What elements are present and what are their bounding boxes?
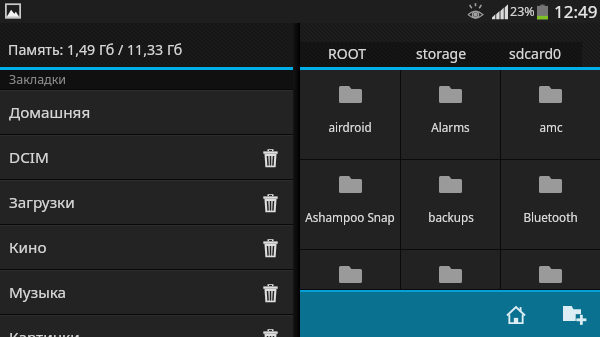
button[interactable]: Музыка — [0, 271, 293, 314]
staticText: DCIM — [9, 147, 248, 168]
staticText: 23% — [510, 3, 535, 20]
button[interactable]: amc — [501, 70, 600, 159]
button[interactable]: Память: 1,49 Гб / 11,33 Гб — [0, 23, 293, 67]
staticText: amc — [539, 119, 563, 135]
staticText: Загрузки — [9, 192, 248, 213]
staticText: ROOT — [328, 44, 366, 63]
staticText: Музыка — [9, 282, 248, 303]
staticText: Кино — [9, 237, 248, 258]
button[interactable]: Ashampoo Snap — [300, 160, 400, 249]
button[interactable] — [300, 250, 400, 289]
button[interactable]: ROOT — [300, 42, 394, 67]
staticText: Alarms — [431, 119, 470, 135]
button[interactable]: backups — [401, 160, 500, 249]
staticText: Картинки — [9, 327, 248, 337]
staticText: Ashampoo Snap — [305, 209, 395, 225]
button[interactable]: Alarms — [401, 70, 500, 159]
staticText: backups — [428, 209, 474, 225]
staticText: sdcard0 — [509, 44, 562, 63]
staticText: Bluetooth — [523, 209, 578, 225]
button[interactable]: Домашняя — [0, 91, 293, 134]
button[interactable]: Delete bookmark — [248, 136, 293, 179]
button[interactable]: New folder — [550, 293, 594, 337]
button[interactable]: Кино — [0, 226, 293, 269]
button[interactable]: sdcard0 — [488, 42, 582, 67]
button[interactable]: Delete bookmark — [248, 271, 293, 314]
staticText: Закладки — [9, 71, 67, 88]
staticText: Память: 1,49 Гб / 11,33 Гб — [8, 40, 183, 59]
button[interactable]: Delete bookmark — [248, 181, 293, 224]
button[interactable]: airdroid — [300, 70, 400, 159]
staticText: airdroid — [328, 119, 372, 135]
button[interactable]: Delete bookmark — [248, 226, 293, 269]
button[interactable]: Home — [494, 293, 538, 337]
staticText: Домашняя — [9, 102, 293, 123]
staticText: 12:49 — [554, 0, 598, 23]
button[interactable]: Delete bookmark — [248, 316, 293, 337]
button[interactable]: storage — [394, 42, 488, 67]
button[interactable] — [401, 250, 500, 289]
button[interactable]: Загрузки — [0, 181, 293, 224]
button[interactable]: Bluetooth — [501, 160, 600, 249]
button[interactable]: DCIM — [0, 136, 293, 179]
button[interactable]: Картинки — [0, 316, 293, 337]
staticText: storage — [416, 44, 467, 63]
button[interactable] — [501, 250, 600, 289]
